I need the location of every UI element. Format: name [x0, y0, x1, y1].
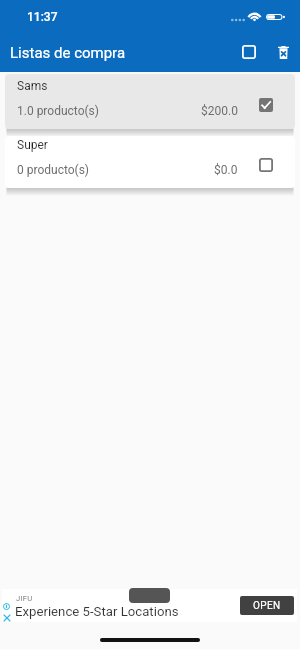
staticText: Super — [17, 138, 48, 152]
staticText: Experience 5-Star Locations — [15, 604, 179, 619]
staticText: 11:37 — [27, 10, 58, 24]
button[interactable]: Checked item — [257, 96, 275, 114]
staticText: Sams — [17, 79, 48, 93]
staticText: 1.0 producto(s) — [17, 104, 99, 118]
staticText: $200.0 — [201, 104, 238, 118]
staticText: 0 producto(s) — [17, 163, 90, 177]
button[interactable]: Home — [100, 638, 200, 642]
button[interactable]: Delete — [266, 32, 300, 72]
staticText: Listas de compra — [10, 44, 126, 62]
button[interactable]: Super — [5, 136, 295, 188]
button[interactable] — [2, 589, 297, 622]
staticText: JIFU — [16, 594, 33, 603]
button[interactable]: Select all — [232, 32, 266, 72]
staticText: OPEN — [253, 600, 281, 612]
staticText: $0.0 — [214, 163, 238, 177]
button[interactable]: OPEN — [240, 596, 294, 615]
button[interactable]: Sams — [5, 74, 295, 129]
button[interactable]: Unchecked item — [257, 156, 275, 174]
